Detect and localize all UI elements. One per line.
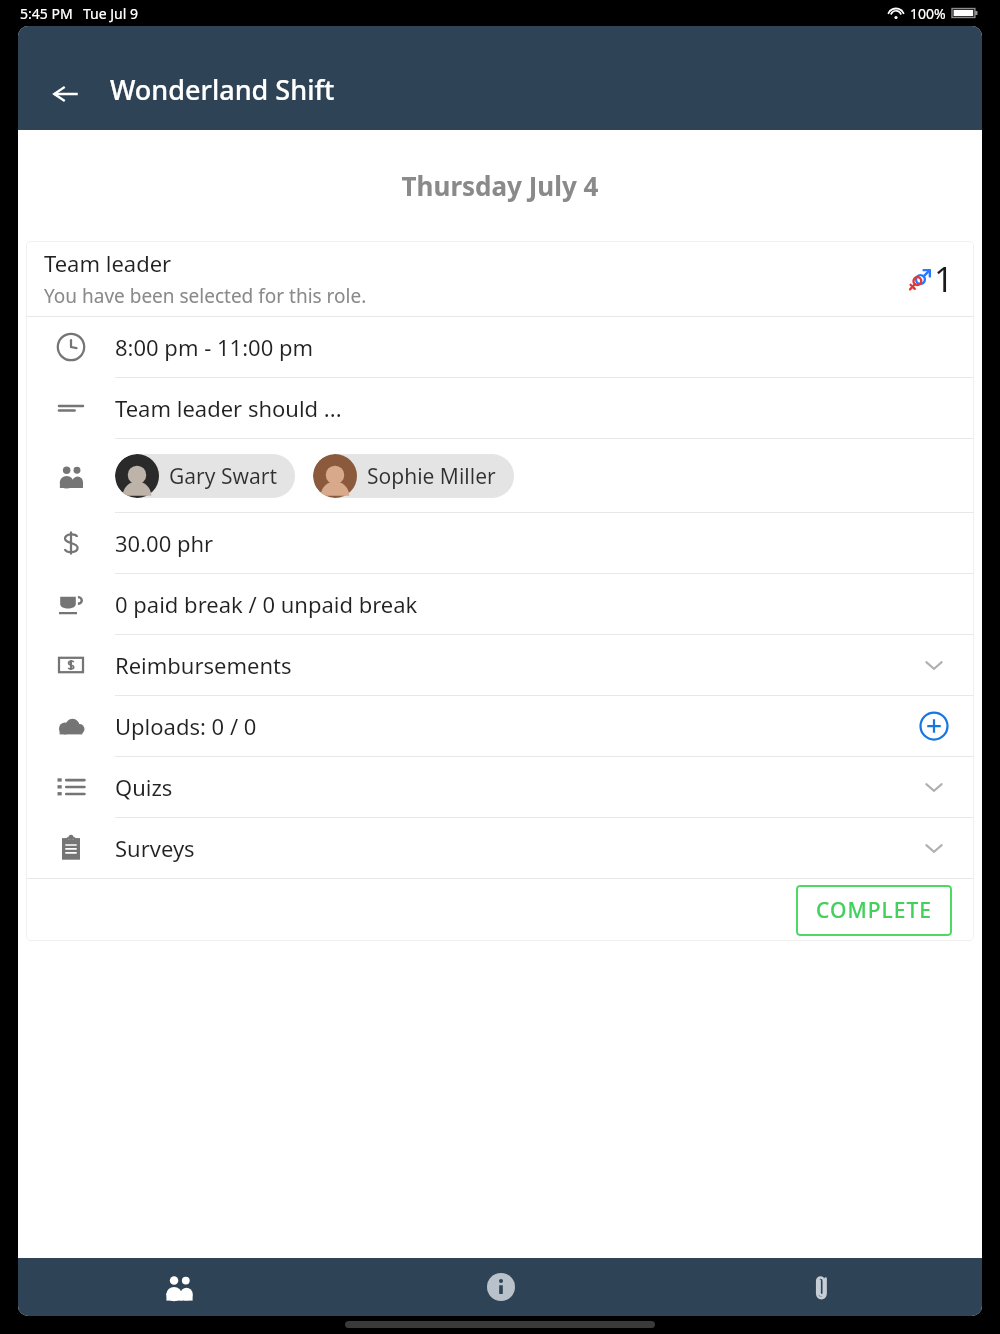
staticText: Reimbursements <box>115 650 292 680</box>
button[interactable]: Expand quizzes <box>910 763 958 811</box>
button[interactable]: COMPLETE <box>796 885 952 936</box>
staticText: Team leader should ... <box>115 393 342 423</box>
button[interactable]: 30.00 phr <box>26 513 974 573</box>
staticText: 5:45 PM <box>20 4 73 23</box>
staticText: You have been selected for this role. <box>44 283 367 309</box>
button[interactable]: Reimbursements <box>26 635 974 695</box>
button[interactable]: Information <box>340 1258 661 1316</box>
staticText: 1 <box>934 256 954 302</box>
staticText: 8:00 pm - 11:00 pm <box>115 332 314 362</box>
button[interactable]: Gary Swart <box>115 454 295 498</box>
button[interactable]: 0 paid break / 0 unpaid break <box>26 574 974 634</box>
staticText: Quizs <box>115 772 173 802</box>
button[interactable]: Expand surveys <box>910 824 958 872</box>
staticText: 30.00 phr <box>115 528 214 558</box>
staticText: Uploads: 0 / 0 <box>115 711 257 741</box>
staticText: Team leader <box>44 248 172 278</box>
staticText: 0 paid break / 0 unpaid break <box>115 589 418 619</box>
button[interactable]: Team leader should ... <box>26 378 974 438</box>
button[interactable]: Attachments <box>661 1258 982 1316</box>
button[interactable]: People <box>18 1258 340 1316</box>
staticText: Surveys <box>115 833 195 863</box>
staticText: Wonderland Shift <box>110 71 335 108</box>
staticText: COMPLETE <box>816 896 932 925</box>
button[interactable]: Sophie Miller <box>313 454 514 498</box>
button[interactable]: Uploads: 0 / 0 <box>26 696 974 756</box>
staticText: Thursday July 4 <box>18 168 982 203</box>
button[interactable]: Surveys <box>26 818 974 878</box>
staticText: Tue Jul 9 <box>83 4 139 23</box>
button[interactable]: 8:00 pm - 11:00 pm <box>26 317 974 377</box>
staticText: 100% <box>910 4 946 23</box>
staticText: Gary Swart <box>169 462 277 491</box>
button[interactable]: Quizs <box>26 757 974 817</box>
button[interactable]: Team leader <box>26 241 974 316</box>
button[interactable]: Back <box>38 66 94 122</box>
button[interactable]: Gary Swart <box>26 439 974 512</box>
button[interactable]: Add upload <box>910 702 958 750</box>
button[interactable]: Expand reimbursements <box>910 641 958 689</box>
staticText: Sophie Miller <box>367 462 496 491</box>
